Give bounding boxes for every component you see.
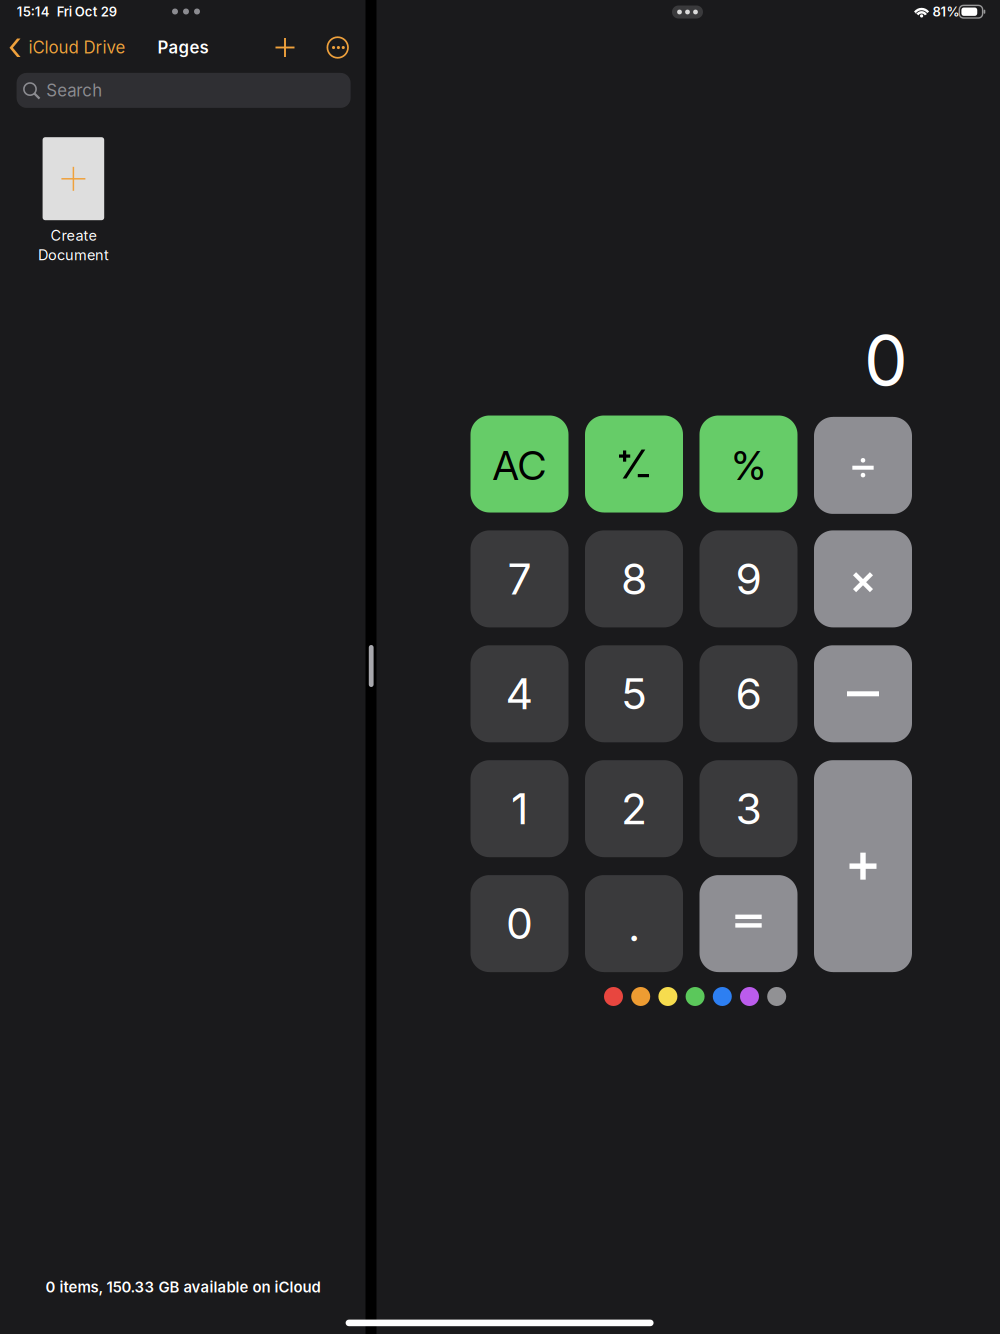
button[interactable]: 2 <box>585 760 683 857</box>
button[interactable]: Subtract <box>814 645 912 742</box>
button[interactable]: 0 <box>470 875 568 972</box>
staticText: 15:14 <box>17 4 50 20</box>
staticText: 4 <box>505 668 533 720</box>
staticText: 1 <box>511 783 528 834</box>
staticText: 6 <box>735 668 761 720</box>
staticText: 5 <box>621 668 647 720</box>
button[interactable]: 8 <box>585 530 683 627</box>
button[interactable]: Red <box>604 987 623 1006</box>
staticText: 0 items, 150.33 GB available on iCloud <box>45 1278 320 1296</box>
button[interactable]: Equals <box>699 875 797 972</box>
staticText: 9 <box>735 553 761 605</box>
button[interactable]: 6 <box>699 645 797 742</box>
staticText: 7 <box>507 553 531 605</box>
button[interactable]: Orange <box>631 987 650 1006</box>
staticText: 3 <box>735 783 761 834</box>
button[interactable]: New Document <box>267 30 303 64</box>
staticText: 0 <box>864 318 908 402</box>
button[interactable]: % <box>699 415 797 512</box>
button[interactable]: Create <box>18 136 128 266</box>
button[interactable]: Purple <box>740 987 759 1006</box>
button[interactable]: iCloud Drive <box>9 30 131 64</box>
staticText: % <box>731 441 765 490</box>
button[interactable]: Yellow <box>658 987 677 1006</box>
button[interactable]: Add <box>814 760 912 972</box>
staticText: 8 <box>621 553 647 605</box>
staticText: AC <box>492 441 546 490</box>
staticText: Search <box>46 80 102 100</box>
staticText: 2 <box>621 783 647 834</box>
staticText: Document <box>38 246 109 264</box>
button[interactable]: More <box>321 30 355 64</box>
staticText: . <box>628 900 640 952</box>
staticText: Pages <box>157 37 208 58</box>
staticText: Fri Oct 29 <box>57 4 117 20</box>
button[interactable]: Green <box>686 987 705 1006</box>
button[interactable]: Search <box>17 73 351 108</box>
button[interactable]: Blue <box>713 987 732 1006</box>
staticText: 0 <box>506 898 533 949</box>
button[interactable]: Divide <box>814 417 912 514</box>
button[interactable]: Plus Minus <box>585 415 683 512</box>
button[interactable]: 1 <box>470 760 568 857</box>
staticText: Create <box>50 227 96 244</box>
button[interactable]: 5 <box>585 645 683 742</box>
button[interactable]: 3 <box>699 760 797 857</box>
button[interactable]: 4 <box>470 645 568 742</box>
staticText: iCloud Drive <box>28 37 125 58</box>
button[interactable]: Grey <box>767 987 786 1006</box>
button[interactable]: 7 <box>470 530 568 627</box>
staticText: 81% <box>932 4 959 20</box>
button[interactable]: Multiply <box>814 530 912 627</box>
button[interactable]: AC <box>470 415 568 512</box>
button[interactable]: 9 <box>699 530 797 627</box>
button[interactable]: . <box>585 875 683 972</box>
